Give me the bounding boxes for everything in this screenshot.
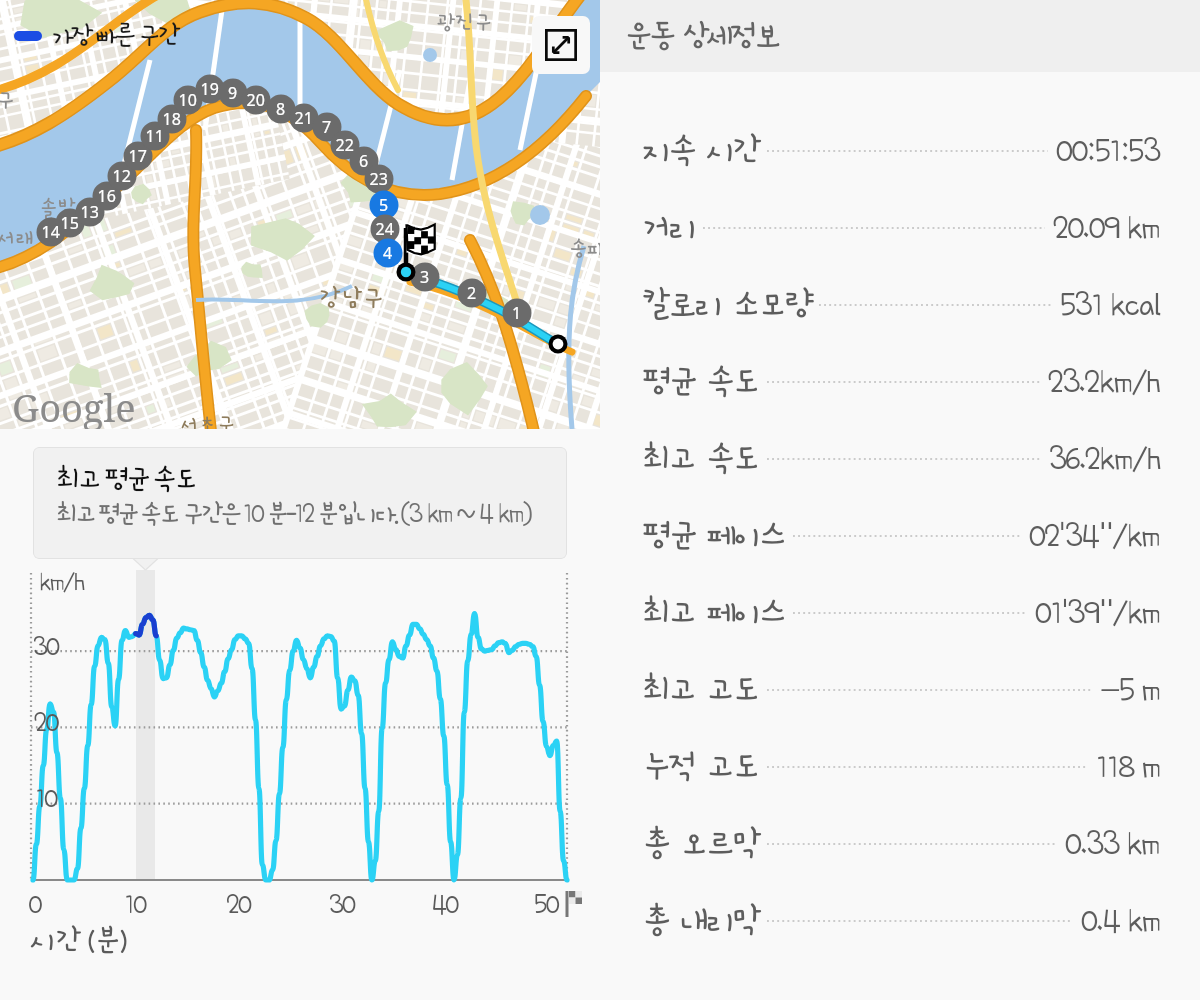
staticText: 23.2km/h: [1048, 364, 1160, 399]
staticText: 총 내리막: [642, 902, 759, 939]
staticText: 가장 빠른 구간: [51, 21, 177, 50]
button[interactable]: 총 내리막: [600, 882, 1200, 959]
button[interactable]: 운동 상세정보: [600, 0, 1200, 72]
staticText: 총 오르막: [642, 825, 759, 862]
button[interactable]: 누적 고도: [600, 728, 1200, 805]
staticText: 0.4 km: [1081, 903, 1160, 938]
staticText: 최고 페이스: [642, 594, 785, 631]
button[interactable]: 최고 속도: [600, 420, 1200, 497]
staticText: 최고 고도: [642, 671, 759, 708]
button[interactable]: 거리: [600, 189, 1200, 266]
staticText: 20.09 km: [1053, 210, 1160, 245]
staticText: 최고 평균 속도: [56, 464, 196, 495]
button[interactable]: 총 오르막: [600, 805, 1200, 882]
staticText: 최고 평균 속도 구간은 10 분-12 분입니다. (3 km ~ 4 km): [56, 500, 531, 529]
button[interactable]: Route map: [0, 0, 600, 429]
button[interactable]: 최고 고도: [600, 651, 1200, 728]
staticText: 118 m: [1096, 749, 1160, 784]
staticText: 최고 속도: [642, 440, 759, 477]
staticText: 누적 고도: [642, 748, 759, 785]
staticText: 거리: [642, 209, 695, 246]
staticText: 36.2km/h: [1049, 441, 1160, 476]
button[interactable]: 지속 시간: [600, 112, 1200, 189]
staticText: -5 m: [1100, 672, 1160, 707]
button[interactable]: 최고 평균 속도: [33, 447, 567, 559]
button[interactable]: 평균 속도: [600, 343, 1200, 420]
button[interactable]: Expand map: [532, 16, 590, 74]
staticText: 0.33 km: [1065, 826, 1160, 861]
staticText: 지속 시간: [642, 132, 759, 169]
staticText: 02'34"/km: [1029, 518, 1160, 553]
button[interactable]: 가장 빠른 구간: [14, 21, 177, 50]
staticText: 531 kcal: [1060, 287, 1160, 322]
staticText: 칼로리 소모량: [642, 286, 811, 323]
staticText: 운동 상세정보: [625, 19, 779, 54]
button[interactable]: 최고 페이스: [600, 574, 1200, 651]
button[interactable]: 평균 페이스: [600, 497, 1200, 574]
button[interactable]: 칼로리 소모량: [600, 266, 1200, 343]
staticText: 01'39"/km: [1035, 595, 1160, 630]
staticText: 00:51:53: [1056, 133, 1160, 168]
staticText: 평균 페이스: [642, 517, 785, 554]
staticText: 평균 속도: [642, 363, 759, 400]
